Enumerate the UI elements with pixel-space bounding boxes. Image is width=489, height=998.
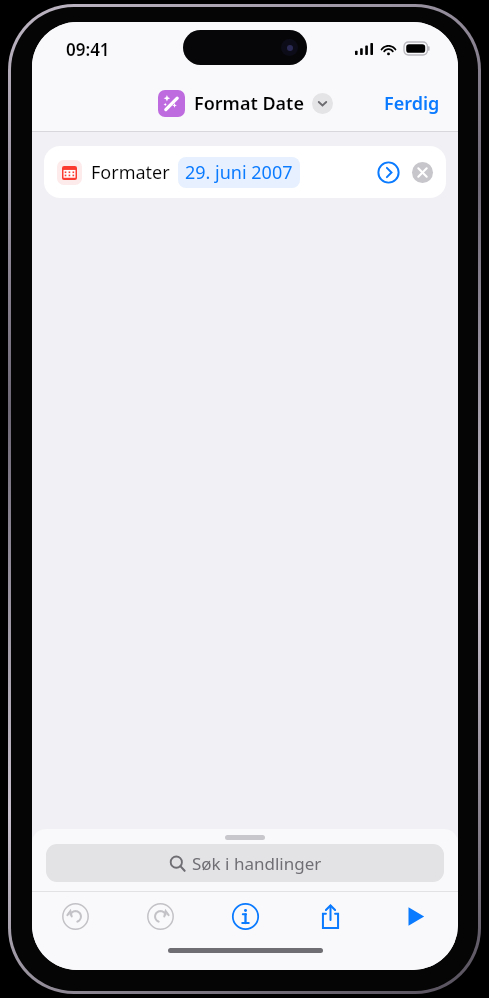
button[interactable]: Redo	[118, 892, 203, 940]
button[interactable]: Run	[373, 892, 458, 940]
button[interactable]: Share	[288, 892, 373, 940]
button[interactable]: Remove action	[406, 156, 438, 188]
other: Show options	[312, 93, 333, 114]
staticText: Formater	[91, 160, 170, 185]
button[interactable]: Format Date	[158, 90, 333, 117]
button[interactable]: Formater	[44, 146, 446, 198]
button[interactable]: Ferdig	[366, 81, 458, 126]
staticText: 09:41	[66, 38, 110, 61]
button[interactable]: Show more	[372, 156, 404, 188]
staticText: 29. juni 2007	[185, 160, 293, 185]
staticText: Ferdig	[384, 91, 440, 116]
button[interactable]: Info	[203, 892, 288, 940]
staticText: Søk i handlinger	[192, 852, 322, 875]
staticText: Format Date	[194, 91, 304, 116]
button[interactable]: Søk i handlinger	[46, 844, 444, 882]
button[interactable]: 29. juni 2007	[178, 157, 300, 188]
button[interactable]: Undo	[32, 892, 118, 940]
